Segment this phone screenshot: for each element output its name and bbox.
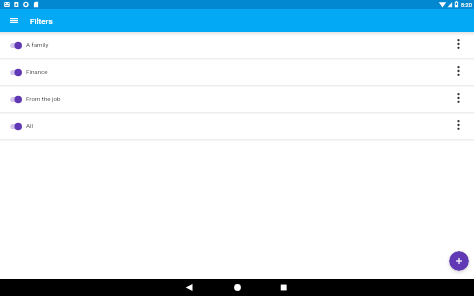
staticText: All — [26, 122, 34, 129]
button[interactable]: Open navigation drawer — [0, 9, 28, 32]
button[interactable]: All — [0, 113, 474, 139]
button[interactable]: More options for All — [448, 115, 468, 137]
staticText: A family — [26, 41, 49, 48]
button[interactable]: More options for From the job — [448, 88, 468, 110]
button[interactable]: Finance — [0, 59, 474, 85]
button[interactable]: More options for A family — [448, 34, 468, 56]
staticText: Filters — [30, 16, 53, 25]
button[interactable]: Add filter — [449, 251, 469, 271]
staticText: 8:20 — [461, 2, 472, 9]
button[interactable]: From the job — [0, 86, 474, 112]
staticText: From the job — [26, 95, 61, 102]
button[interactable]: More options for Finance — [448, 61, 468, 83]
staticText: Finance — [26, 68, 48, 75]
button[interactable]: A family — [0, 32, 474, 58]
